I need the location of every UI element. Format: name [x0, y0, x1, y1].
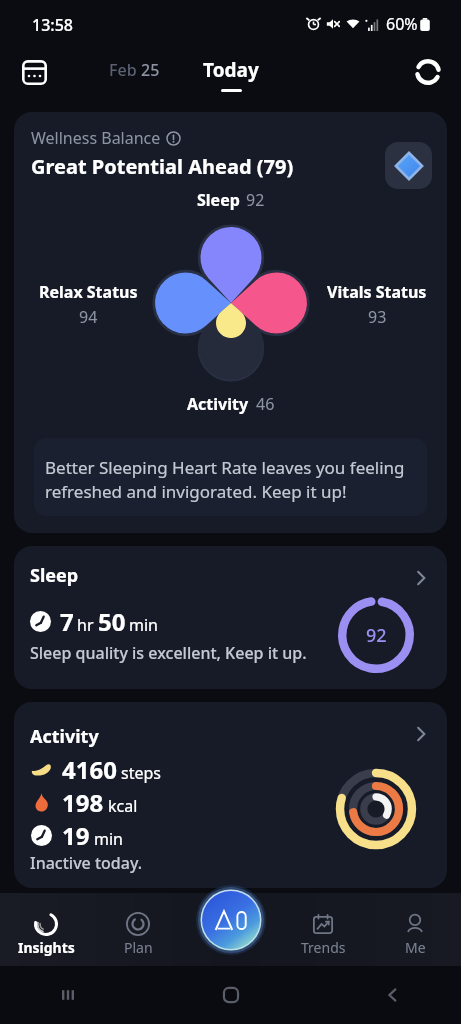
- staticText: Trends: [301, 938, 346, 957]
- staticText: 50: [98, 605, 126, 638]
- button[interactable]: Today: [195, 53, 267, 96]
- staticText: kcal: [108, 795, 138, 817]
- staticText: Great Potential Ahead (79): [31, 153, 294, 180]
- staticText: 92: [366, 623, 387, 648]
- staticText: 198: [62, 786, 104, 819]
- button[interactable]: AI assistant: [196, 885, 266, 955]
- button[interactable]: Trends: [277, 893, 369, 957]
- staticText: 94: [79, 306, 98, 328]
- staticText: Sleep quality is excellent, Keep it up.: [30, 642, 307, 664]
- staticText: 13:58: [32, 14, 73, 36]
- staticText: Wellness Balance: [31, 127, 161, 149]
- staticText: 7: [60, 605, 74, 638]
- staticText: Plan: [124, 938, 153, 957]
- button[interactable]: Sync: [404, 48, 452, 96]
- staticText: Vitals Status: [327, 281, 427, 303]
- button[interactable]: Me: [369, 893, 461, 957]
- staticText: min: [94, 828, 123, 850]
- staticText: 93: [368, 306, 387, 328]
- staticText: Feb: [109, 59, 141, 81]
- staticText: steps: [121, 762, 161, 784]
- staticText: hr: [77, 614, 94, 636]
- button[interactable]: Plan: [92, 893, 184, 957]
- button[interactable]: Open details: [409, 722, 433, 746]
- staticText: Today: [203, 57, 259, 83]
- button[interactable]: Activity: [14, 702, 447, 888]
- button[interactable]: Feb: [101, 51, 168, 89]
- staticText: Activity: [187, 393, 249, 415]
- staticText: Sleep: [197, 189, 240, 211]
- staticText: Inactive today.: [30, 852, 143, 874]
- button[interactable]: Sleep: [14, 546, 447, 689]
- button[interactable]: Wellness Balance: [14, 112, 447, 533]
- staticText: Better Sleeping Heart Rate leaves you fe…: [45, 456, 416, 503]
- staticText: Insights: [18, 938, 75, 957]
- staticText: 92: [246, 189, 265, 211]
- button[interactable]: Open details: [409, 566, 433, 590]
- staticText: 19: [62, 819, 90, 852]
- staticText: 25: [141, 59, 160, 81]
- staticText: Me: [405, 938, 426, 957]
- staticText: Sleep: [30, 563, 79, 588]
- button[interactable]: Calendar: [10, 48, 58, 96]
- button[interactable]: Wellness badge: [385, 142, 432, 189]
- staticText: 46: [256, 393, 275, 415]
- staticText: 60%: [386, 13, 418, 35]
- staticText: Relax Status: [39, 281, 138, 303]
- staticText: Activity: [30, 724, 99, 749]
- staticText: min: [129, 614, 158, 636]
- button[interactable]: Insights: [0, 893, 92, 957]
- staticText: 4160: [62, 753, 117, 786]
